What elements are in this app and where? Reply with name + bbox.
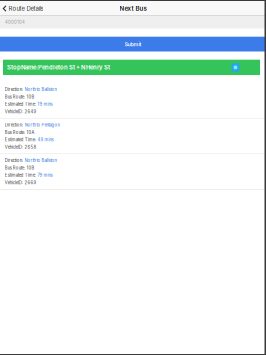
staticText: Estimated Time: — [5, 102, 36, 107]
staticText: Route Details — [8, 5, 43, 12]
staticText: Direction: — [5, 122, 23, 128]
staticText: 2669 — [24, 180, 36, 185]
button[interactable]: Direction: — [0, 83, 266, 118]
staticText: Next Bus — [119, 5, 146, 12]
staticText: North to Pentagon — [24, 122, 59, 128]
staticText: 49 mins — [37, 137, 53, 142]
staticText: 2649 — [24, 109, 36, 114]
staticText: Bus Route: — [5, 165, 25, 170]
button[interactable]: Direction: — [0, 119, 266, 153]
staticText: North to Ballston — [24, 87, 56, 92]
staticText: VehicleID: — [5, 145, 23, 150]
staticText: 4000104 — [5, 20, 25, 25]
staticText: 10A — [26, 130, 34, 135]
staticText: North to Ballston — [24, 158, 56, 163]
button[interactable]: Route Details — [0, 2, 49, 15]
button[interactable]: 4000104 — [0, 16, 266, 29]
staticText: VehicleID: — [5, 180, 23, 185]
staticText: Submit — [124, 41, 141, 47]
staticText: 79 mins — [37, 173, 52, 178]
staticText: 2658 — [24, 145, 36, 150]
staticText: Direction: — [5, 158, 23, 163]
staticText: Estimated Time: — [5, 137, 36, 142]
staticText: Bus Route: — [5, 94, 25, 99]
staticText: Estimated Time: — [5, 173, 36, 178]
button[interactable]: Loading — [230, 62, 240, 72]
button[interactable]: Direction: — [0, 154, 266, 189]
staticText: VehicleID: — [5, 109, 23, 114]
staticText: 19 mins — [37, 102, 52, 107]
staticText: Direction: — [5, 87, 23, 92]
staticText: StopName:Pendleton St + N Henry St — [7, 64, 110, 71]
staticText: 10B — [26, 165, 34, 170]
staticText: Bus Route: — [5, 130, 25, 135]
button[interactable]: Submit — [0, 37, 266, 52]
staticText: 10B — [26, 94, 34, 99]
